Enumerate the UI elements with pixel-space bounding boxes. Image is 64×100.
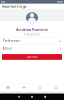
staticText: LOG OUT (26, 55, 37, 59)
button[interactable]: Back (17, 94, 20, 100)
button[interactable]: Groups (16, 83, 32, 91)
button[interactable]: About (0, 45, 64, 52)
staticText: Preferences (3, 39, 20, 43)
button[interactable]: LOG OUT (2, 54, 62, 60)
staticText: View profile (23, 33, 40, 36)
staticText: Andrew Ramirez (16, 27, 48, 32)
button[interactable]: Discover (32, 83, 48, 91)
button[interactable]: Recent apps (43, 94, 47, 100)
button[interactable]: Home (30, 94, 34, 100)
button[interactable]: Preferences (0, 38, 64, 45)
staticText: View Settings (2, 4, 27, 9)
button[interactable]: Profile (48, 83, 64, 91)
staticText: About (3, 47, 12, 50)
button[interactable]: Messages (0, 83, 16, 91)
